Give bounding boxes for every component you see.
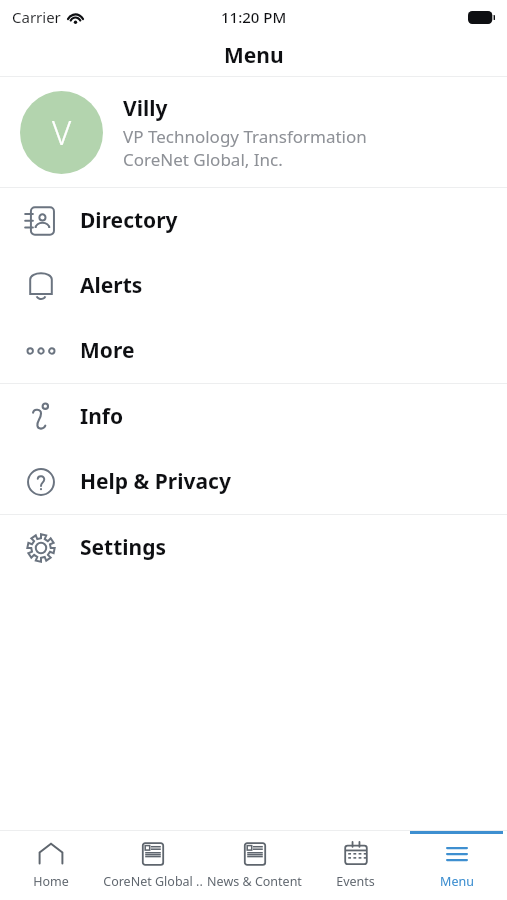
button[interactable]: V	[0, 77, 507, 187]
staticText: CoreNet Global, Inc.	[123, 148, 283, 171]
button[interactable]: Home	[0, 831, 102, 900]
button[interactable]: CoreNet Global ..	[102, 831, 204, 900]
button[interactable]: Directory	[0, 188, 507, 253]
staticText: CoreNet Global ..	[103, 873, 203, 890]
other: Menu	[442, 839, 472, 869]
button[interactable]: Alerts	[0, 253, 507, 318]
staticText: More	[80, 336, 135, 365]
staticText: Help & Privacy	[80, 467, 231, 496]
button[interactable]: Menu	[406, 831, 507, 900]
button[interactable]: Events	[305, 831, 406, 900]
staticText: Settings	[80, 533, 167, 562]
button[interactable]: Info	[0, 384, 507, 449]
staticText: Carrier	[12, 7, 61, 27]
button[interactable]: News & Content	[204, 831, 305, 900]
staticText: V	[52, 110, 72, 155]
staticText: Events	[336, 873, 375, 890]
staticText: Menu	[440, 873, 474, 890]
staticText: VP Technology Transformation	[123, 125, 367, 148]
button[interactable]: Settings	[0, 515, 507, 580]
staticText: News & Content	[207, 873, 302, 890]
staticText: Home	[33, 873, 69, 890]
staticText: Menu	[224, 41, 284, 70]
staticText: Villy	[123, 94, 168, 123]
staticText: Directory	[80, 206, 178, 235]
staticText: 11:20 PM	[221, 7, 287, 27]
button[interactable]: More	[0, 318, 507, 383]
staticText: Alerts	[80, 271, 143, 300]
button[interactable]: Help & Privacy	[0, 449, 507, 514]
other: Home	[36, 839, 66, 869]
staticText: Info	[80, 402, 124, 431]
